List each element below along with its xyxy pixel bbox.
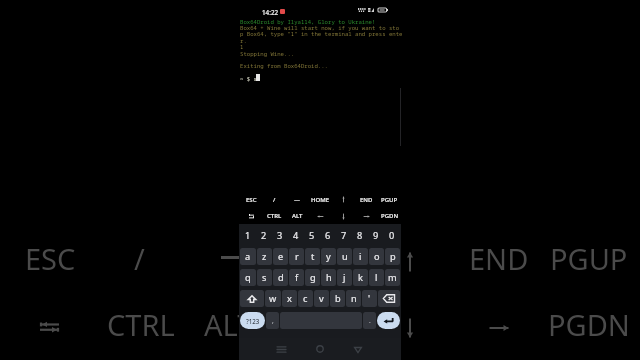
staticText: / [134, 239, 145, 278]
button[interactable]: x [282, 290, 297, 307]
button[interactable]: / [263, 191, 286, 208]
staticText: 7 [341, 229, 347, 242]
staticText: ALT [292, 212, 303, 220]
staticText: a [245, 250, 251, 263]
button[interactable]: q [240, 269, 256, 286]
staticText: u [342, 250, 348, 263]
staticText: p Box64, type "1" in the terminal and pr… [240, 30, 402, 38]
button[interactable]: 2 [256, 229, 272, 242]
button[interactable]: Right [355, 208, 378, 224]
button[interactable]: Enter [377, 312, 400, 329]
button[interactable]: z [257, 248, 272, 265]
staticText: ALT [204, 305, 254, 344]
staticText: m [388, 271, 397, 284]
button[interactable]: — [286, 191, 309, 208]
staticText: Exiting from Box64Droid... [240, 62, 328, 70]
staticText: Box64 + Wine will start now, if you want… [240, 24, 400, 32]
staticText: Box64Droid by Ilya114, Glory to Ukraine! [240, 18, 376, 26]
button[interactable]: 0 [384, 229, 400, 242]
button[interactable]: 4 [288, 229, 304, 242]
staticText: r. [240, 37, 247, 45]
button[interactable]: u [337, 248, 352, 265]
staticText: — [294, 196, 301, 204]
button[interactable]: ?123 [240, 312, 265, 329]
button[interactable]: . [363, 312, 376, 329]
button[interactable]: ' [362, 290, 377, 307]
button[interactable]: e [273, 248, 288, 265]
button[interactable]: , [266, 312, 279, 329]
staticText: CTRL [267, 212, 282, 220]
button[interactable]: 3 [272, 229, 288, 242]
button[interactable]: d [273, 269, 288, 286]
staticText: p [390, 250, 396, 263]
button[interactable]: 8 [352, 229, 368, 242]
button[interactable]: g [305, 269, 320, 286]
staticText: ~ $ s [240, 75, 257, 83]
staticText: . [369, 316, 371, 325]
button[interactable]: HOME [309, 191, 332, 208]
button[interactable]: 9 [368, 229, 384, 242]
button[interactable]: Tab [239, 208, 263, 224]
staticText: s [262, 271, 267, 284]
button[interactable]: 6 [320, 229, 336, 242]
button[interactable]: k [353, 269, 368, 286]
staticText: o [374, 250, 380, 263]
staticText: z [262, 250, 267, 263]
button[interactable]: Up [332, 191, 355, 208]
staticText: ' [368, 292, 371, 305]
button[interactable]: Shift [240, 290, 264, 307]
staticText: 9 [373, 229, 379, 242]
staticText: / [273, 196, 276, 204]
staticText: 5 [309, 229, 315, 242]
button[interactable]: h [321, 269, 336, 286]
button[interactable]: c [298, 290, 313, 307]
button[interactable]: w [265, 290, 281, 307]
button[interactable]: s [257, 269, 272, 286]
button[interactable]: i [353, 248, 368, 265]
staticText: v [319, 292, 324, 305]
button[interactable]: 1 [240, 229, 256, 242]
staticText: i [359, 250, 362, 263]
button[interactable]: p [385, 248, 400, 265]
staticText: HOME [311, 196, 330, 204]
button[interactable]: ALT [286, 208, 309, 224]
button[interactable]: ESC [239, 191, 263, 208]
staticText: 0 [389, 229, 395, 242]
button[interactable]: Left [309, 208, 332, 224]
button[interactable]: r [289, 248, 304, 265]
staticText: x [287, 292, 292, 305]
button[interactable]: a [240, 248, 256, 265]
button[interactable]: y [321, 248, 336, 265]
staticText: 14:22 [262, 8, 279, 17]
staticText: t [311, 250, 315, 263]
staticText: 2 [261, 229, 267, 242]
button[interactable]: l [369, 269, 384, 286]
button[interactable]: Recent apps [267, 338, 295, 360]
button[interactable]: END [355, 191, 378, 208]
button[interactable]: n [346, 290, 361, 307]
staticText: 6 [325, 229, 331, 242]
button[interactable]: Back [344, 338, 372, 360]
staticText: END [360, 196, 373, 204]
button[interactable]: PGDN [378, 208, 401, 224]
staticText: f [295, 271, 299, 284]
staticText: PGUP [381, 196, 398, 204]
button[interactable]: Down [332, 208, 355, 224]
button[interactable]: v [314, 290, 329, 307]
button[interactable]: o [369, 248, 384, 265]
button[interactable]: PGUP [378, 191, 401, 208]
button[interactable]: m [385, 269, 400, 286]
button[interactable]: f [289, 269, 304, 286]
button[interactable]: 5 [304, 229, 320, 242]
staticText: 1 [245, 229, 251, 242]
button[interactable]: j [337, 269, 352, 286]
button[interactable]: CTRL [263, 208, 286, 224]
staticText: 8 [357, 229, 363, 242]
button[interactable]: Home [306, 338, 334, 360]
staticText: 3 [277, 229, 283, 242]
button[interactable]: 7 [336, 229, 352, 242]
button[interactable]: Backspace [378, 290, 400, 307]
button[interactable]: t [305, 248, 320, 265]
button[interactable]: b [330, 290, 345, 307]
